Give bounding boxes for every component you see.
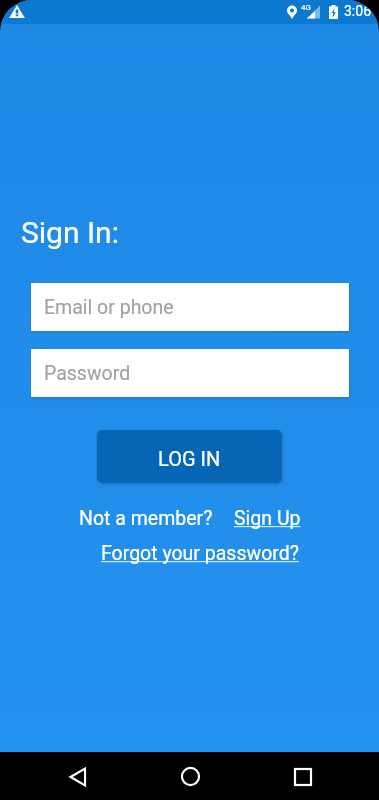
button[interactable]: Home [170,756,210,796]
staticText: 4G [301,3,311,12]
staticText: Not a member? [79,507,213,530]
button[interactable]: Email or phone [31,283,349,331]
staticText: Password [44,362,131,385]
staticText: Sign Up [234,507,301,530]
staticText: 3:06 [344,3,371,19]
button[interactable]: LOG IN [97,430,282,483]
button[interactable]: Recent apps [283,757,323,797]
button[interactable]: Password [31,349,349,397]
button[interactable]: Sign Up [234,507,301,530]
button[interactable]: Back [58,757,98,797]
staticText: Forgot your password? [101,542,299,565]
staticText: LOG IN [158,447,221,470]
staticText: Sign In: [21,215,119,250]
staticText: Email or phone [44,296,174,319]
button[interactable]: Forgot your password? [101,542,299,565]
